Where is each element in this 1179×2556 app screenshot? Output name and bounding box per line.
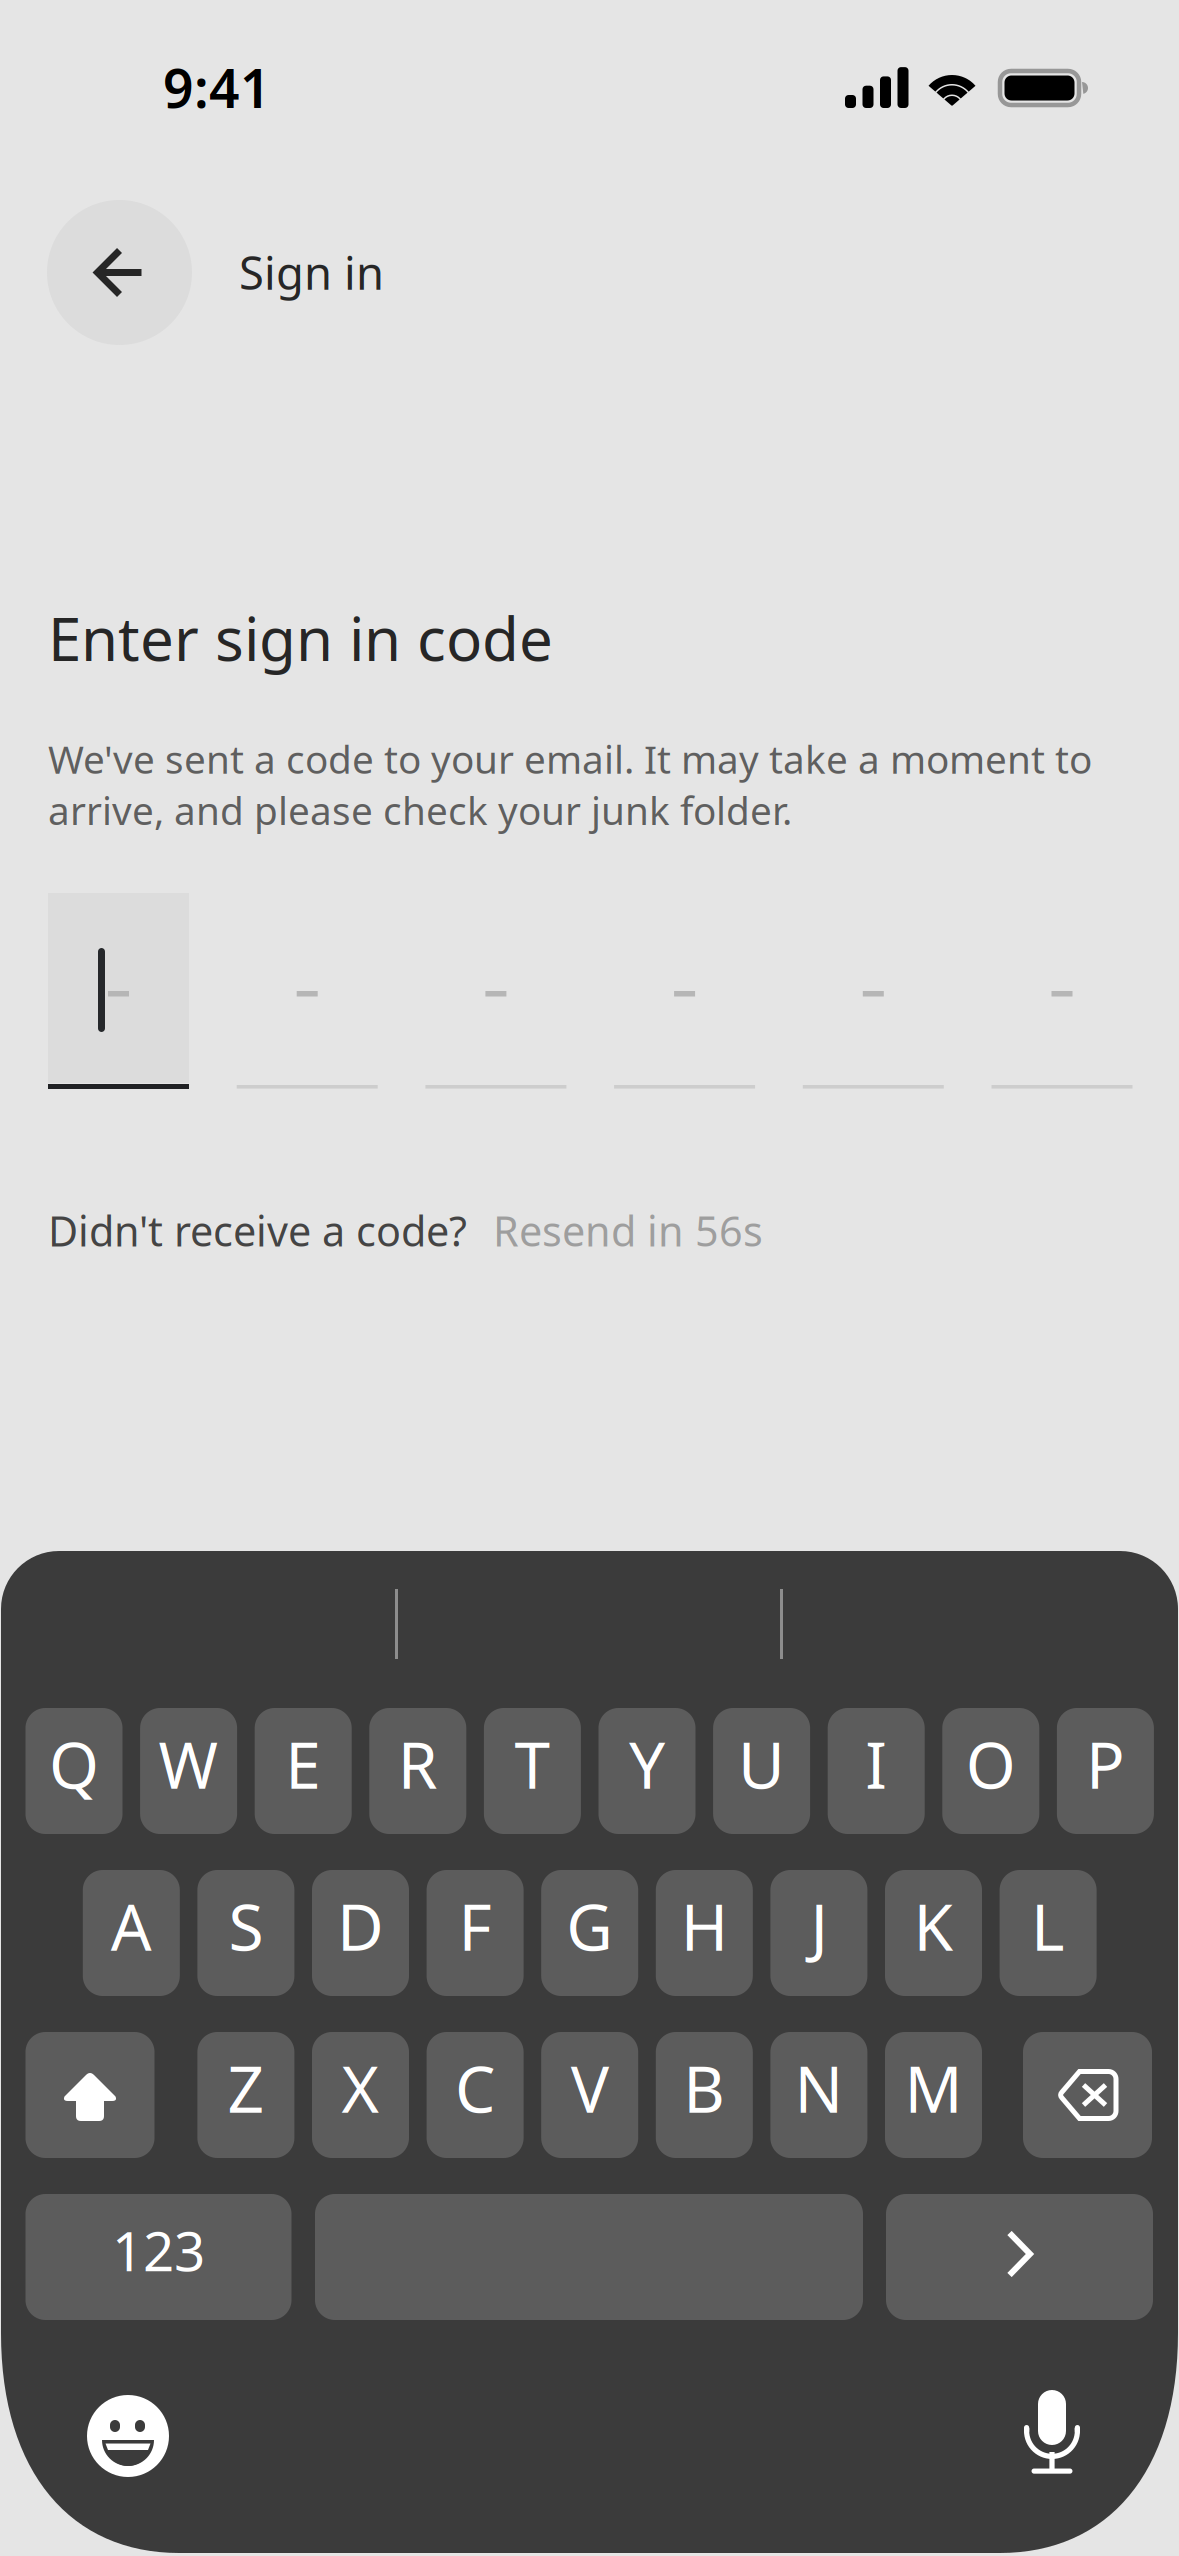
staticText: U (738, 1721, 785, 1806)
staticText: W (159, 1721, 219, 1806)
staticText: D (337, 1883, 384, 1968)
button[interactable]: W (140, 1708, 237, 1834)
staticText: V (571, 2045, 609, 2130)
button[interactable]: Back (47, 200, 192, 345)
staticText: S (228, 1883, 263, 1968)
button[interactable]: Code digit (803, 893, 944, 1089)
button[interactable]: Code digit (237, 893, 378, 1089)
staticText: A (111, 1883, 152, 1968)
staticText: O (966, 1721, 1016, 1806)
button[interactable]: Dictation (997, 2378, 1107, 2488)
button[interactable]: Z (197, 2032, 294, 2158)
button[interactable]: I (828, 1708, 925, 1834)
staticText: We've sent a code to your email. It may … (48, 733, 1092, 836)
staticText: Didn't receive a code? (48, 1203, 467, 1258)
button[interactable]: X (312, 2032, 409, 2158)
staticText: I (865, 1721, 887, 1806)
staticText: Resend in 56s (493, 1203, 763, 1258)
button[interactable]: P (1057, 1708, 1154, 1834)
button[interactable]: E (255, 1708, 352, 1834)
staticText: 123 (112, 2214, 205, 2286)
staticText: M (904, 2045, 962, 2130)
staticText: J (810, 1883, 827, 1968)
button[interactable]: C (427, 2032, 524, 2158)
button[interactable]: M (885, 2032, 982, 2158)
button[interactable]: G (541, 1870, 638, 1996)
button[interactable]: L (1000, 1870, 1097, 1996)
button[interactable]: N (770, 2032, 867, 2158)
staticText: E (285, 1721, 321, 1806)
button[interactable]: U (713, 1708, 810, 1834)
staticText: C (455, 2045, 495, 2130)
button[interactable]: Code digit (425, 893, 566, 1089)
button[interactable]: Code digit (614, 893, 755, 1089)
button[interactable]: Y (598, 1708, 695, 1834)
button[interactable]: Shift (25, 2032, 154, 2158)
button[interactable]: J (770, 1870, 867, 1996)
button[interactable]: A (83, 1870, 180, 1996)
button[interactable]: H (656, 1870, 753, 1996)
staticText: X (341, 2045, 379, 2130)
button[interactable]: Code digit (991, 893, 1132, 1089)
button[interactable]: Delete (1023, 2032, 1152, 2158)
button[interactable]: D (312, 1870, 409, 1996)
staticText: L (1031, 1883, 1065, 1968)
button[interactable]: Q (25, 1708, 122, 1834)
staticText: F (459, 1883, 492, 1968)
staticText: B (683, 2045, 725, 2130)
button[interactable]: Resend in 56s (493, 1203, 763, 1258)
staticText: N (794, 2045, 843, 2130)
button[interactable]: Return (886, 2194, 1153, 2320)
button[interactable]: Code digit 1 (48, 893, 189, 1089)
staticText: Z (227, 2045, 264, 2130)
button[interactable]: 123 (25, 2194, 291, 2320)
staticText: Enter sign in code (48, 598, 553, 678)
staticText: R (398, 1721, 438, 1806)
button[interactable]: S (197, 1870, 294, 1996)
button[interactable]: K (885, 1870, 982, 1996)
button[interactable]: B (656, 2032, 753, 2158)
staticText: P (1086, 1721, 1125, 1806)
staticText: H (681, 1883, 728, 1968)
button[interactable]: T (484, 1708, 581, 1834)
staticText: K (913, 1883, 953, 1968)
staticText: 9:41 (163, 52, 271, 123)
staticText: Y (629, 1721, 665, 1806)
staticText: T (514, 1721, 550, 1806)
staticText: Q (49, 1721, 99, 1806)
button[interactable]: O (942, 1708, 1039, 1834)
staticText: Sign in (239, 242, 384, 302)
button[interactable]: F (427, 1870, 524, 1996)
button[interactable]: V (541, 2032, 638, 2158)
staticText: G (566, 1883, 613, 1968)
button[interactable]: R (369, 1708, 466, 1834)
button[interactable]: Emoji keyboard (73, 2381, 183, 2491)
